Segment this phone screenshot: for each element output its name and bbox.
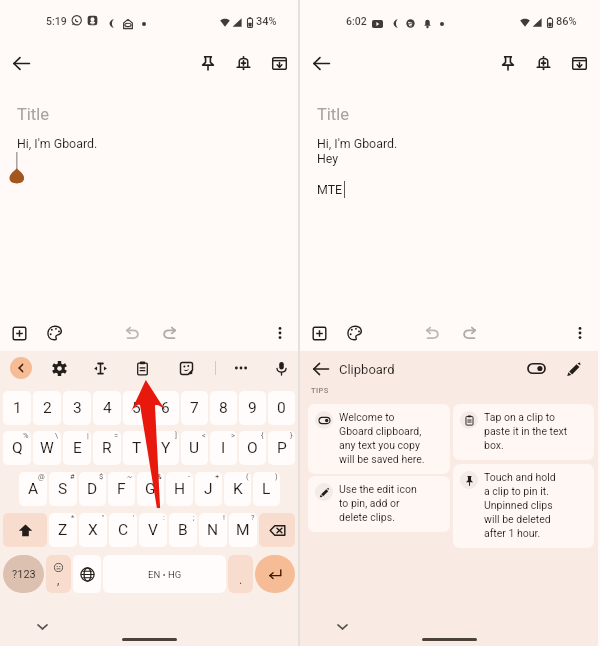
- staticText: }: [290, 431, 293, 440]
- staticText: ,: [57, 573, 60, 587]
- button[interactable]: Z: [49, 513, 77, 547]
- staticText: Clipboard: [339, 362, 395, 377]
- button[interactable]: Add reminder: [530, 50, 557, 77]
- button[interactable]: 0: [268, 391, 295, 425]
- staticText: B: [178, 521, 188, 539]
- staticText: @: [38, 472, 45, 481]
- button[interactable]: 5: [123, 391, 150, 425]
- button[interactable]: B: [169, 513, 197, 547]
- button[interactable]: 4: [93, 391, 121, 425]
- button[interactable]: Pin: [495, 50, 521, 76]
- button[interactable]: W: [33, 431, 61, 465]
- button[interactable]: C: [109, 513, 137, 547]
- button[interactable]: Archive: [566, 50, 593, 77]
- staticText: 3: [73, 399, 82, 417]
- button[interactable]: Redo: [456, 320, 482, 346]
- staticText: 2: [43, 399, 52, 417]
- button[interactable]: O: [239, 431, 266, 465]
- button[interactable]: Emoji and comma: [46, 555, 71, 593]
- button[interactable]: .: [228, 555, 253, 593]
- staticText: ?: [251, 513, 255, 522]
- staticText: \: [55, 431, 59, 440]
- button[interactable]: More: [229, 356, 253, 380]
- button[interactable]: 3: [63, 391, 91, 425]
- staticText: O: [247, 439, 258, 457]
- button[interactable]: Add: [307, 321, 332, 346]
- button[interactable]: M: [229, 513, 257, 547]
- button[interactable]: Back: [7, 49, 36, 78]
- button[interactable]: Voice input: [269, 356, 294, 381]
- button[interactable]: Use the edit icon to pin, add or delete …: [308, 476, 450, 532]
- button[interactable]: N: [199, 513, 227, 547]
- button[interactable]: Archive: [266, 50, 293, 77]
- button[interactable]: T: [123, 431, 150, 465]
- button[interactable]: J: [195, 472, 222, 506]
- button[interactable]: Back: [10, 357, 32, 379]
- button[interactable]: P: [268, 431, 295, 465]
- staticText: J: [204, 480, 213, 498]
- button[interactable]: Stickers: [174, 356, 199, 381]
- button[interactable]: H: [166, 472, 193, 506]
- button[interactable]: Hide keyboard: [31, 615, 54, 638]
- button[interactable]: I: [210, 431, 237, 465]
- button[interactable]: F: [108, 472, 135, 506]
- button[interactable]: E: [63, 431, 91, 465]
- staticText: Title: [17, 105, 50, 124]
- button[interactable]: V: [139, 513, 167, 547]
- button[interactable]: X: [79, 513, 107, 547]
- button[interactable]: Y: [152, 431, 179, 465]
- button[interactable]: 7: [181, 391, 208, 425]
- button[interactable]: 8: [210, 391, 237, 425]
- button[interactable]: Text editing: [88, 356, 113, 381]
- button[interactable]: Shift: [3, 513, 47, 547]
- staticText: MTE: [317, 182, 343, 197]
- button[interactable]: 2: [33, 391, 61, 425]
- button[interactable]: S: [49, 472, 77, 506]
- button[interactable]: Undo: [120, 320, 146, 346]
- button[interactable]: More options: [568, 321, 592, 345]
- button[interactable]: Back: [307, 355, 335, 383]
- button[interactable]: Pin: [195, 50, 221, 76]
- button[interactable]: ?123: [3, 555, 44, 593]
- button[interactable]: Add reminder: [230, 50, 257, 77]
- staticText: &: [157, 472, 162, 481]
- button[interactable]: Toggle clipboard: [523, 355, 550, 382]
- button[interactable]: Tap on a clip to paste it in the text bo…: [453, 404, 594, 460]
- button[interactable]: L: [253, 472, 280, 506]
- button[interactable]: Change colour: [42, 320, 68, 346]
- staticText: Y: [161, 439, 171, 457]
- button[interactable]: D: [79, 472, 106, 506]
- staticText: H: [174, 480, 186, 498]
- button[interactable]: Enter: [255, 555, 295, 593]
- button[interactable]: Welcome to Gboard clipboard, any text yo…: [308, 404, 450, 474]
- button[interactable]: Edit: [561, 356, 587, 382]
- staticText: %: [23, 431, 29, 440]
- button[interactable]: K: [224, 472, 251, 506]
- button[interactable]: 9: [239, 391, 266, 425]
- button[interactable]: U: [181, 431, 208, 465]
- button[interactable]: R: [93, 431, 121, 465]
- button[interactable]: Touch and hold a clip to pin it. Unpinne…: [453, 464, 594, 548]
- button[interactable]: Q: [3, 431, 31, 465]
- button[interactable]: Backspace: [259, 513, 295, 547]
- staticText: G: [145, 480, 156, 498]
- button[interactable]: Hide keyboard: [331, 615, 354, 638]
- button[interactable]: Add: [7, 321, 32, 346]
- staticText: Title: [317, 105, 350, 124]
- button[interactable]: Redo: [156, 320, 182, 346]
- button[interactable]: Settings: [47, 356, 72, 381]
- button[interactable]: Clipboard: [130, 356, 155, 381]
- button[interactable]: A: [19, 472, 47, 506]
- button[interactable]: Undo: [420, 320, 446, 346]
- button[interactable]: G: [137, 472, 164, 506]
- button[interactable]: Change colour: [342, 320, 368, 346]
- button[interactable]: 1: [3, 391, 31, 425]
- button[interactable]: More options: [268, 321, 292, 345]
- button[interactable]: 6: [152, 391, 179, 425]
- button[interactable]: Change language: [73, 555, 101, 593]
- button[interactable]: EN • HG: [103, 555, 226, 593]
- staticText: Hi, I'm Gboard.: [317, 136, 398, 151]
- staticText: TIPS: [311, 386, 329, 395]
- staticText: T: [132, 439, 142, 457]
- button[interactable]: Back: [307, 49, 336, 78]
